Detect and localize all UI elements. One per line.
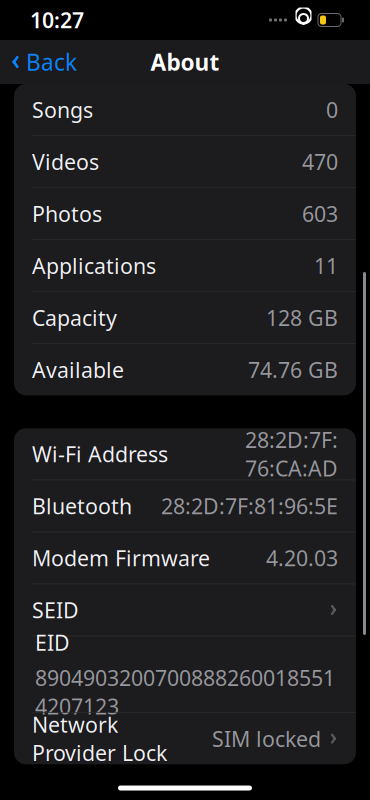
staticText: Modem Firmware (32, 544, 210, 572)
staticText: Photos (32, 199, 102, 228)
staticText: 11 (314, 251, 338, 280)
button[interactable]: Back (0, 40, 85, 84)
staticText: SIM locked (212, 724, 321, 753)
staticText: 89049032007008882600185514207123 (35, 664, 335, 720)
staticText: 4.20.03 (266, 544, 338, 572)
staticText: Back (26, 47, 77, 77)
staticText: 10:27 (30, 6, 84, 34)
staticText: 128 GB (266, 303, 338, 332)
staticText: 470 (302, 147, 338, 176)
staticText: Available (32, 355, 124, 384)
staticText: Bluetooth (32, 492, 132, 520)
staticText: SEID (32, 596, 79, 624)
staticText: Wi-Fi Address (32, 440, 168, 468)
staticText: About (150, 47, 219, 77)
staticText: EID (35, 628, 70, 657)
button[interactable]: SEID (14, 584, 356, 636)
staticText: 28:2D:7F:81:96:5E (161, 492, 338, 520)
staticText: Applications (32, 251, 156, 280)
button[interactable]: EID (17, 636, 353, 712)
staticText: Network Provider Lock (32, 710, 167, 767)
staticText: 0 (326, 95, 338, 124)
staticText: Videos (32, 147, 99, 176)
staticText: Capacity (32, 303, 117, 332)
staticText: 603 (302, 199, 338, 228)
staticText: 28:2D:7F:76:CA:AD (245, 426, 338, 482)
button[interactable]: Network Provider Lock (14, 713, 356, 764)
staticText: Songs (32, 95, 93, 124)
staticText: 74.76 GB (248, 355, 338, 384)
